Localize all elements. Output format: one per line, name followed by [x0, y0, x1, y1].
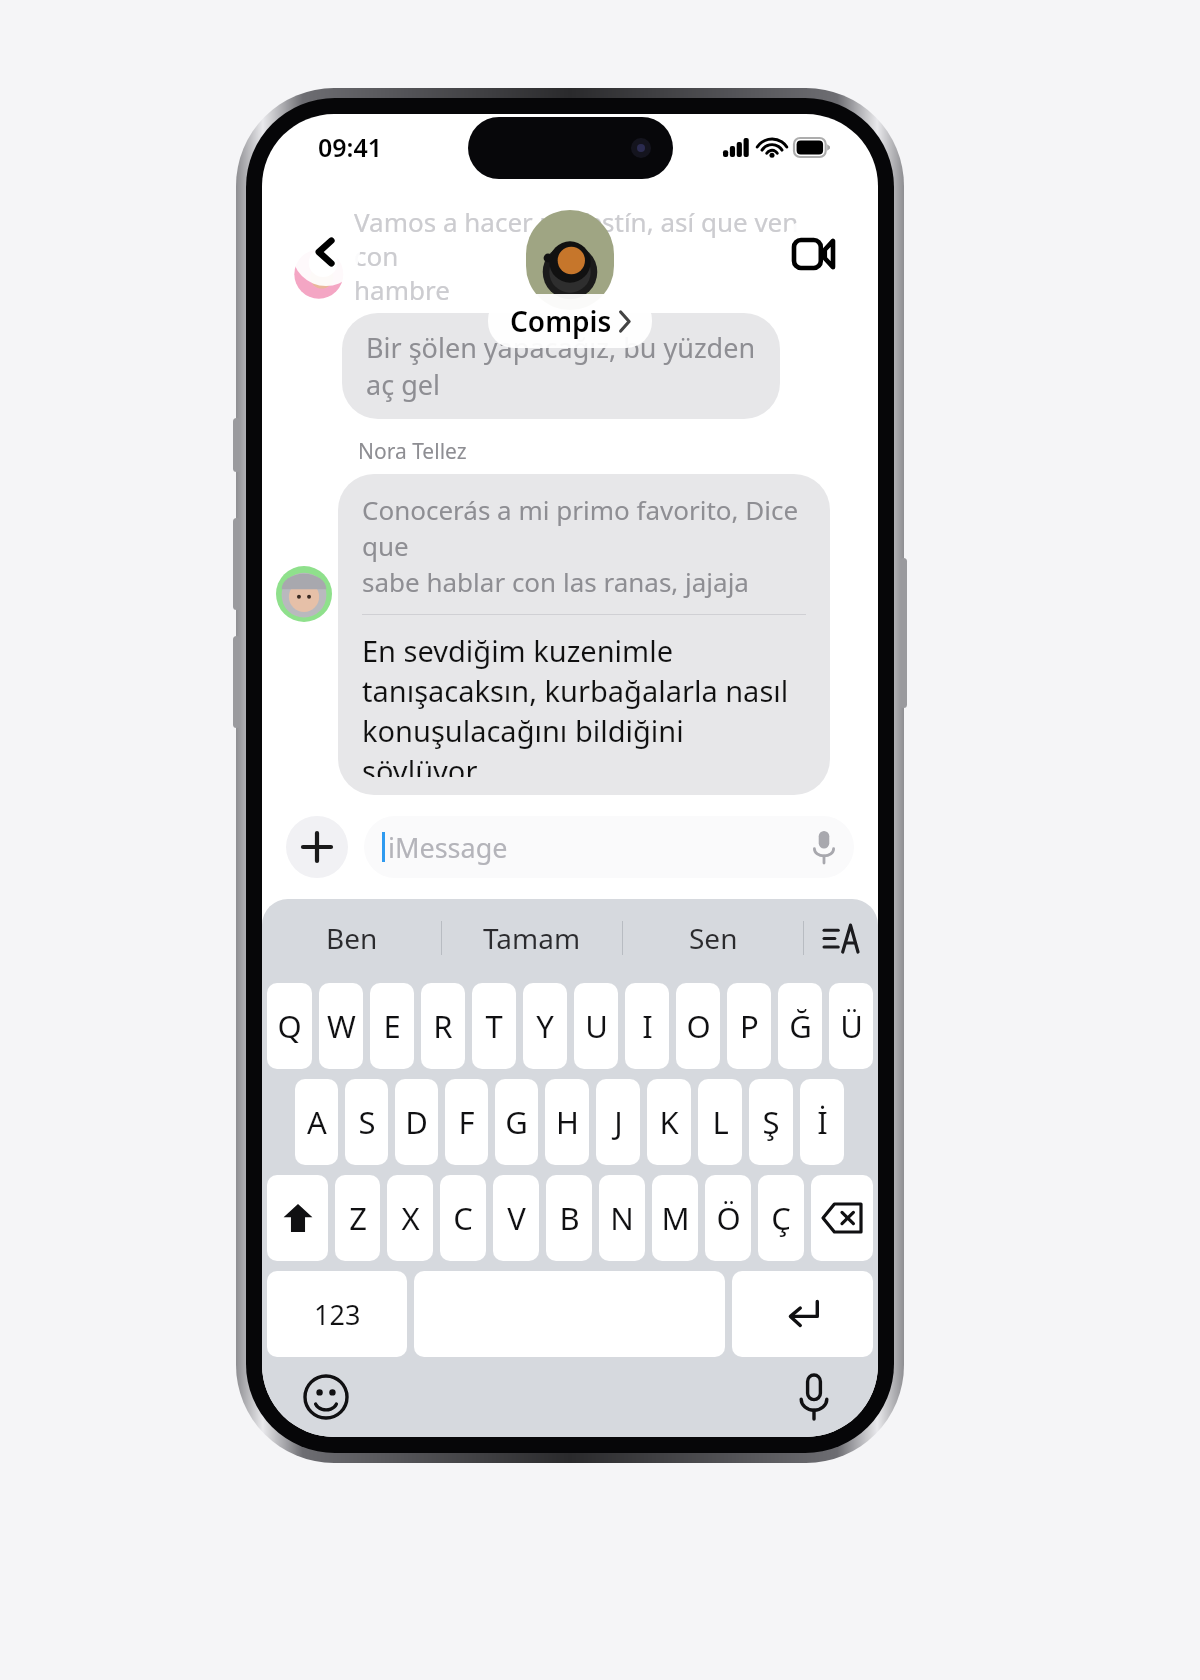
- button[interactable]: G: [495, 1079, 538, 1165]
- staticText: Ğ: [789, 1005, 812, 1047]
- button[interactable]: Add attachment: [286, 816, 348, 878]
- staticText: L: [712, 1101, 729, 1143]
- button[interactable]: H: [545, 1079, 589, 1165]
- staticText: Ş: [762, 1101, 780, 1143]
- staticText: Ben: [326, 919, 378, 957]
- button[interactable]: Conocerás a mi primo favorito, Dice que …: [338, 474, 830, 795]
- button[interactable]: V: [493, 1175, 539, 1261]
- button[interactable]: O: [676, 983, 720, 1069]
- staticText: Sen: [689, 919, 738, 957]
- button[interactable]: [276, 566, 332, 622]
- button[interactable]: Q: [267, 983, 312, 1069]
- staticText: T: [485, 1005, 503, 1047]
- button[interactable]: L: [698, 1079, 742, 1165]
- button[interactable]: Z: [335, 1175, 380, 1261]
- button[interactable]: Tamam: [442, 899, 622, 977]
- staticText: D: [405, 1101, 428, 1143]
- button[interactable]: [526, 210, 614, 310]
- button[interactable]: D: [395, 1079, 438, 1165]
- button[interactable]: K: [647, 1079, 691, 1165]
- staticText: 123: [314, 1296, 361, 1333]
- button[interactable]: N: [599, 1175, 645, 1261]
- staticText: R: [433, 1005, 453, 1047]
- staticText: K: [659, 1101, 679, 1143]
- staticText: O: [686, 1005, 711, 1047]
- staticText: Ö: [716, 1197, 741, 1239]
- button[interactable]: İ: [800, 1079, 844, 1165]
- button[interactable]: Back: [290, 218, 362, 290]
- staticText: iMessage: [388, 829, 508, 866]
- staticText: I: [642, 1005, 653, 1047]
- staticText: M: [661, 1197, 690, 1239]
- button[interactable]: T: [472, 983, 516, 1069]
- button[interactable]: C: [440, 1175, 486, 1261]
- button[interactable]: F: [445, 1079, 488, 1165]
- button[interactable]: Ğ: [778, 983, 822, 1069]
- button[interactable]: Ş: [749, 1079, 793, 1165]
- staticText: G: [505, 1101, 528, 1143]
- button[interactable]: J: [596, 1079, 640, 1165]
- button[interactable]: Ç: [758, 1175, 804, 1261]
- button[interactable]: Return: [732, 1271, 873, 1357]
- staticText: N: [610, 1197, 634, 1239]
- staticText: F: [458, 1101, 475, 1143]
- button[interactable]: I: [625, 983, 669, 1069]
- button[interactable]: Backspace: [811, 1175, 873, 1261]
- button[interactable]: W: [319, 983, 363, 1069]
- button[interactable]: R: [421, 983, 465, 1069]
- button[interactable]: Bir şölen yapacağız, bu yüzden aç gel: [342, 313, 780, 419]
- staticText: Tamam: [483, 919, 581, 957]
- button[interactable]: Dictate: [812, 831, 836, 863]
- staticText: U: [585, 1005, 608, 1047]
- staticText: C: [453, 1197, 473, 1239]
- button[interactable]: Formatting: [804, 899, 878, 977]
- staticText: Z: [349, 1197, 367, 1239]
- staticText: H: [556, 1101, 579, 1143]
- button[interactable]: S: [345, 1079, 388, 1165]
- button[interactable]: X: [387, 1175, 433, 1261]
- button[interactable]: Ö: [705, 1175, 751, 1261]
- button[interactable]: Dictation: [786, 1369, 842, 1425]
- staticText: Nora Tellez: [358, 437, 467, 466]
- staticText: J: [614, 1101, 623, 1143]
- staticText: Ü: [840, 1005, 863, 1047]
- button[interactable]: E: [370, 983, 414, 1069]
- staticText: S: [358, 1101, 376, 1143]
- staticText: Ç: [771, 1197, 791, 1239]
- staticText: Bir şölen yapacağız, bu yüzden aç gel: [366, 329, 756, 403]
- button[interactable]: P: [727, 983, 771, 1069]
- staticText: W: [327, 1005, 356, 1047]
- button[interactable]: A: [295, 1079, 338, 1165]
- staticText: En sevdiğim kuzenimle tanışacaksın, kurb…: [362, 631, 806, 777]
- staticText: A: [307, 1101, 327, 1143]
- button[interactable]: Compis: [488, 294, 652, 348]
- staticText: X: [401, 1197, 420, 1239]
- button[interactable]: 123: [267, 1271, 407, 1357]
- staticText: Conocerás a mi primo favorito, Dice que …: [362, 492, 806, 600]
- button[interactable]: B: [546, 1175, 592, 1261]
- button[interactable]: iMessage: [364, 816, 854, 878]
- button[interactable]: U: [574, 983, 618, 1069]
- staticText: Compis: [510, 302, 612, 340]
- button[interactable]: Y: [523, 983, 567, 1069]
- staticText: İ: [817, 1101, 828, 1143]
- button[interactable]: Ü: [829, 983, 873, 1069]
- staticText: Y: [536, 1005, 554, 1047]
- staticText: 09:41: [318, 130, 383, 164]
- button[interactable]: Sen: [623, 899, 803, 977]
- staticText: P: [740, 1005, 759, 1047]
- staticText: E: [383, 1005, 401, 1047]
- button[interactable]: FaceTime video call: [778, 218, 850, 290]
- button[interactable]: M: [652, 1175, 698, 1261]
- button[interactable]: Shift: [267, 1175, 328, 1261]
- staticText: Vamos a hacer un festín, así que ven con…: [354, 204, 818, 307]
- staticText: Q: [277, 1005, 302, 1047]
- button[interactable]: Ben: [262, 899, 441, 977]
- staticText: V: [507, 1197, 526, 1239]
- button[interactable]: Emoji: [298, 1369, 354, 1425]
- staticText: B: [559, 1197, 580, 1239]
